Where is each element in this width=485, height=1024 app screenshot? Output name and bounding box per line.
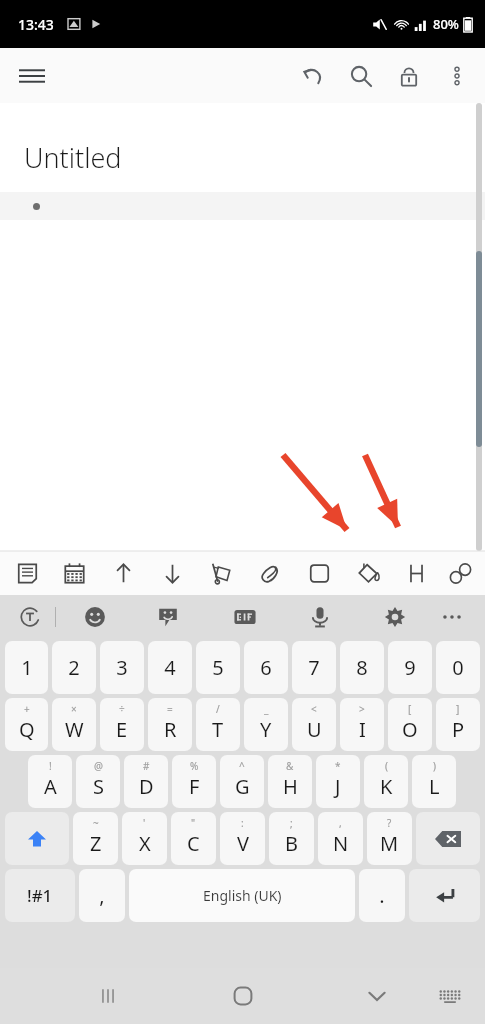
button[interactable]: Shift [5, 812, 69, 865]
button[interactable]: ' [122, 812, 167, 865]
button[interactable]: !#1 [5, 869, 75, 922]
button[interactable]: Lock [385, 52, 433, 100]
staticText: @ [94, 759, 103, 773]
button[interactable]: 1 [5, 641, 48, 694]
staticText: 9 [404, 654, 416, 681]
button[interactable]: 9 [388, 641, 432, 694]
button[interactable]: . [359, 869, 405, 922]
button[interactable]: 8 [340, 641, 384, 694]
staticText: 2 [68, 654, 80, 681]
button[interactable]: Emoji [73, 595, 117, 639]
staticText: !#1 [27, 884, 53, 907]
button[interactable]: Move down [150, 551, 194, 595]
button[interactable]: Link [438, 551, 482, 595]
staticText: L [429, 773, 440, 800]
button[interactable]: # [124, 755, 168, 808]
staticText: K [380, 773, 393, 800]
staticText: 4 [164, 654, 176, 681]
button[interactable]: × [52, 698, 96, 751]
staticText: Untitled [24, 139, 122, 176]
button[interactable]: _ [244, 698, 288, 751]
staticText: & [286, 759, 294, 773]
staticText: 13:43 [18, 15, 54, 34]
button[interactable]: Note [5, 551, 49, 595]
staticText: _ [264, 702, 269, 716]
staticText: ) [433, 759, 436, 773]
button[interactable]: More [430, 595, 474, 639]
button[interactable]: 0 [436, 641, 480, 694]
button[interactable]: 3 [100, 641, 144, 694]
button[interactable]: Recents [86, 974, 130, 1018]
staticText: D [139, 773, 154, 800]
staticText: Z [90, 830, 102, 857]
button[interactable]: 2 [52, 641, 96, 694]
button[interactable]: Undo [289, 52, 337, 100]
button[interactable]: Hide keyboard [355, 974, 399, 1018]
button[interactable]: & [268, 755, 312, 808]
button[interactable]: ! [28, 755, 72, 808]
button[interactable]: ÷ [100, 698, 144, 751]
button[interactable]: , [318, 812, 363, 865]
button[interactable]: " [171, 812, 216, 865]
staticText: Q [19, 716, 35, 743]
button[interactable]: Calendar [52, 551, 96, 595]
button[interactable]: = [148, 698, 192, 751]
button[interactable]: Translate [8, 595, 52, 639]
button[interactable]: + [5, 698, 48, 751]
button[interactable]: Change keyboard [430, 976, 470, 1016]
button[interactable]: [ [388, 698, 432, 751]
button[interactable]: Attach [248, 551, 292, 595]
button[interactable]: Menu [10, 54, 54, 98]
button[interactable]: Home [219, 972, 267, 1020]
staticText: ( [385, 759, 388, 773]
staticText: = [167, 702, 173, 716]
button[interactable]: Enter [409, 869, 480, 922]
button[interactable]: Backspace [416, 812, 480, 865]
button[interactable]: ( [364, 755, 408, 808]
button[interactable]: Fill colour [346, 551, 390, 595]
button[interactable]: Heading [394, 551, 438, 595]
button[interactable]: Voice input [298, 595, 342, 639]
button[interactable]: ~ [73, 812, 118, 865]
staticText: , [339, 816, 342, 830]
button[interactable]: Stickers [146, 595, 190, 639]
button[interactable]: Shape [297, 551, 341, 595]
staticText: H [283, 773, 298, 800]
button[interactable]: * [316, 755, 360, 808]
button[interactable]: ] [436, 698, 480, 751]
button[interactable]: < [292, 698, 336, 751]
button[interactable]: 5 [196, 641, 240, 694]
button[interactable]: 4 [148, 641, 192, 694]
button[interactable]: ; [269, 812, 314, 865]
staticText: O [402, 716, 418, 743]
button[interactable]: ) [412, 755, 456, 808]
button[interactable]: ^ [220, 755, 264, 808]
button[interactable]: > [340, 698, 384, 751]
button[interactable]: Settings [373, 595, 417, 639]
staticText: W [65, 716, 84, 743]
button[interactable]: English (UK) [129, 869, 355, 922]
staticText: ? [387, 816, 392, 830]
button[interactable]: Search [337, 52, 385, 100]
staticText: : [241, 816, 244, 830]
staticText: J [335, 773, 341, 800]
button[interactable]: : [220, 812, 265, 865]
button[interactable]: / [196, 698, 240, 751]
button[interactable]: GIF [223, 595, 267, 639]
staticText: . [379, 882, 385, 909]
staticText: English (UK) [203, 886, 282, 905]
button[interactable]: , [79, 869, 125, 922]
staticText: 6 [260, 654, 272, 681]
staticText: ! [49, 759, 52, 773]
button[interactable]: @ [76, 755, 120, 808]
staticText: N [333, 830, 349, 857]
button[interactable]: 7 [292, 641, 336, 694]
button[interactable]: 6 [244, 641, 288, 694]
staticText: S [93, 773, 104, 800]
button[interactable]: More options [433, 52, 481, 100]
button[interactable]: Task [199, 551, 243, 595]
button[interactable]: ? [367, 812, 412, 865]
button[interactable]: Move up [101, 551, 145, 595]
staticText: A [44, 773, 57, 800]
button[interactable]: % [172, 755, 216, 808]
